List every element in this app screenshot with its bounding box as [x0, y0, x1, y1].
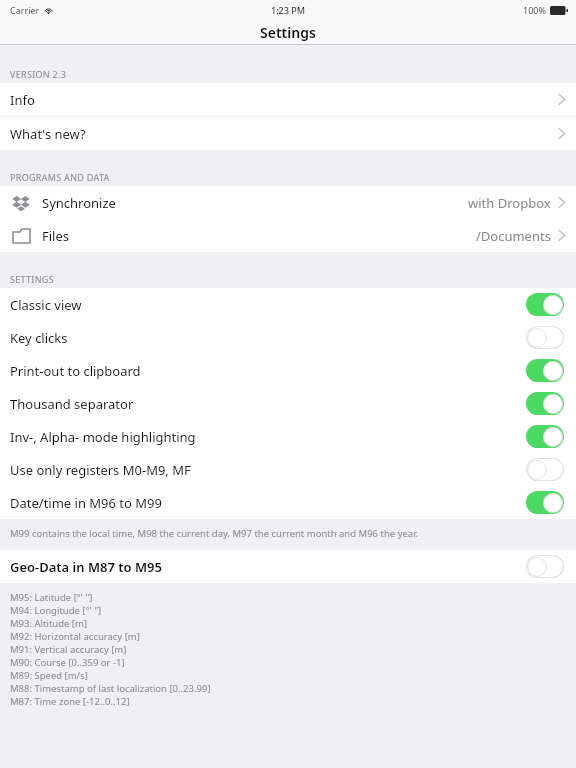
staticText: What's new?: [10, 125, 86, 143]
button[interactable]: Files: [0, 219, 576, 252]
button[interactable]: Synchronize: [0, 186, 576, 219]
staticText: M94: Longitude [°' "]: [10, 604, 102, 617]
staticText: Inv-, Alpha- mode highlighting: [10, 428, 196, 446]
button[interactable]: Key clicks: [0, 321, 576, 354]
staticText: Classic view: [10, 296, 82, 314]
staticText: PROGRAMS AND DATA: [10, 171, 110, 183]
staticText: VERSION 2.3: [10, 68, 67, 80]
staticText: M87: Time zone [-12..0..12]: [10, 695, 130, 708]
staticText: with Dropbox: [468, 194, 551, 212]
button[interactable]: Geo-Data in M87 to M95: [0, 550, 576, 583]
staticText: Key clicks: [10, 329, 68, 347]
button[interactable]: Info: [0, 83, 576, 116]
staticText: Info: [10, 91, 35, 109]
staticText: Files: [42, 227, 70, 245]
staticText: Date/time in M96 to M99: [10, 494, 162, 512]
button[interactable]: Thousand separator: [0, 387, 576, 420]
staticText: Print-out to clipboard: [10, 362, 141, 380]
staticText: Carrier: [10, 4, 40, 16]
staticText: Use only registers M0-M9, MF: [10, 461, 191, 479]
button[interactable]: Use only registers M0-M9, MF: [0, 453, 576, 486]
staticText: M95: Latitude [°' "]: [10, 591, 93, 604]
staticText: Thousand separator: [10, 395, 134, 413]
staticText: M88: Timestamp of last localization [0..…: [10, 682, 211, 695]
button[interactable]: What's new?: [0, 117, 576, 150]
staticText: M91: Vertical accuracy [m]: [10, 643, 127, 656]
staticText: SETTINGS: [10, 273, 54, 285]
button[interactable]: Inv-, Alpha- mode highlighting: [0, 420, 576, 453]
staticText: Synchronize: [42, 194, 116, 212]
staticText: M90: Course [0..359 or -1]: [10, 656, 125, 669]
staticText: 100%: [523, 4, 546, 16]
staticText: M99 contains the local time, M98 the cur…: [10, 527, 419, 540]
button[interactable]: Date/time in M96 to M99: [0, 486, 576, 519]
staticText: M93: Altitude [m]: [10, 617, 88, 630]
button[interactable]: Print-out to clipboard: [0, 354, 576, 387]
staticText: 1:23 PM: [271, 4, 305, 16]
staticText: M89: Speed [m/s]: [10, 669, 88, 682]
button[interactable]: Classic view: [0, 288, 576, 321]
staticText: Settings: [260, 23, 316, 42]
staticText: Geo-Data in M87 to M95: [10, 558, 162, 576]
staticText: M92: Horizontal accuracy [m]: [10, 630, 140, 643]
staticText: /Documents: [476, 227, 551, 245]
